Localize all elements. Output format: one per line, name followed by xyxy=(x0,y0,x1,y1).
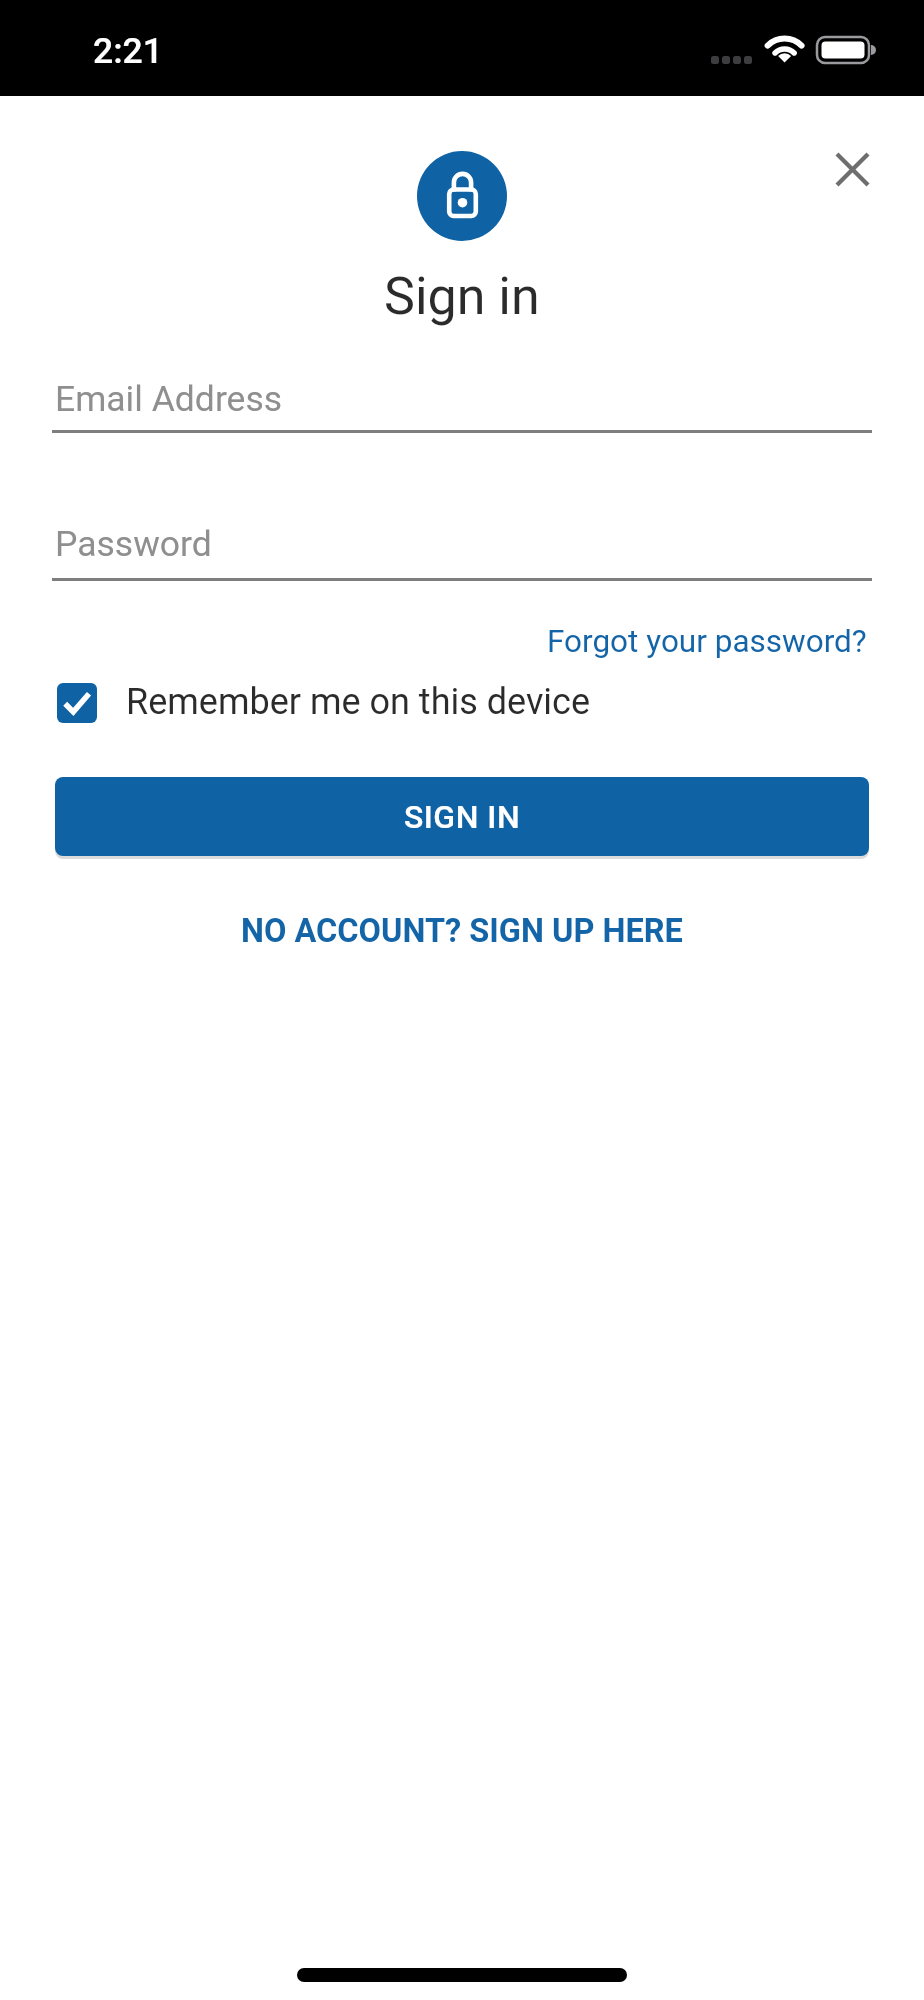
staticText: NO ACCOUNT? SIGN UP HERE xyxy=(241,912,683,950)
staticText: 2:21 xyxy=(93,30,163,72)
staticText: Sign in xyxy=(384,266,540,327)
staticText: SIGN IN xyxy=(404,798,521,836)
staticText: Remember me on this device xyxy=(126,681,591,723)
button[interactable] xyxy=(831,148,874,191)
button[interactable]: Forgot your password? xyxy=(547,623,867,660)
staticText: Password xyxy=(55,523,212,565)
button[interactable]: SIGN IN xyxy=(55,777,869,856)
staticText: Forgot your password? xyxy=(547,623,867,660)
staticText: Email Address xyxy=(55,378,283,420)
button[interactable] xyxy=(57,683,97,723)
button[interactable]: NO ACCOUNT? SIGN UP HERE xyxy=(241,912,683,950)
